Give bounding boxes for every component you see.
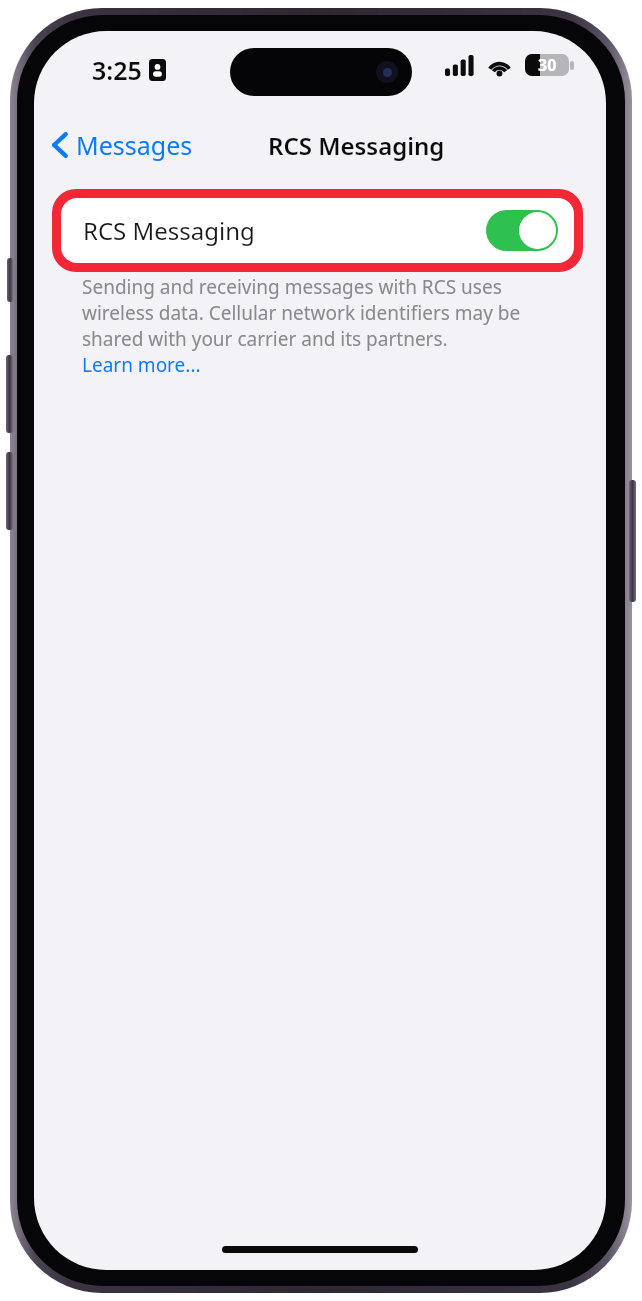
staticText: RCS Messaging bbox=[268, 129, 445, 162]
button[interactable]: RCS Messaging toggle bbox=[486, 210, 558, 251]
button[interactable]: Messages bbox=[46, 122, 199, 168]
button[interactable]: RCS Messaging bbox=[61, 198, 574, 263]
staticText: wireless data. Cellular network identifi… bbox=[82, 300, 521, 326]
staticText: Learn more... bbox=[82, 352, 201, 378]
staticText: 30 bbox=[538, 54, 557, 76]
staticText: Sending and receiving messages with RCS … bbox=[82, 274, 502, 300]
staticText: RCS Messaging bbox=[83, 214, 255, 247]
staticText: 3:25 bbox=[92, 53, 142, 87]
button[interactable]: Learn more... bbox=[82, 352, 201, 378]
staticText: shared with your carrier and its partner… bbox=[82, 326, 448, 352]
staticText: Messages bbox=[76, 128, 193, 162]
